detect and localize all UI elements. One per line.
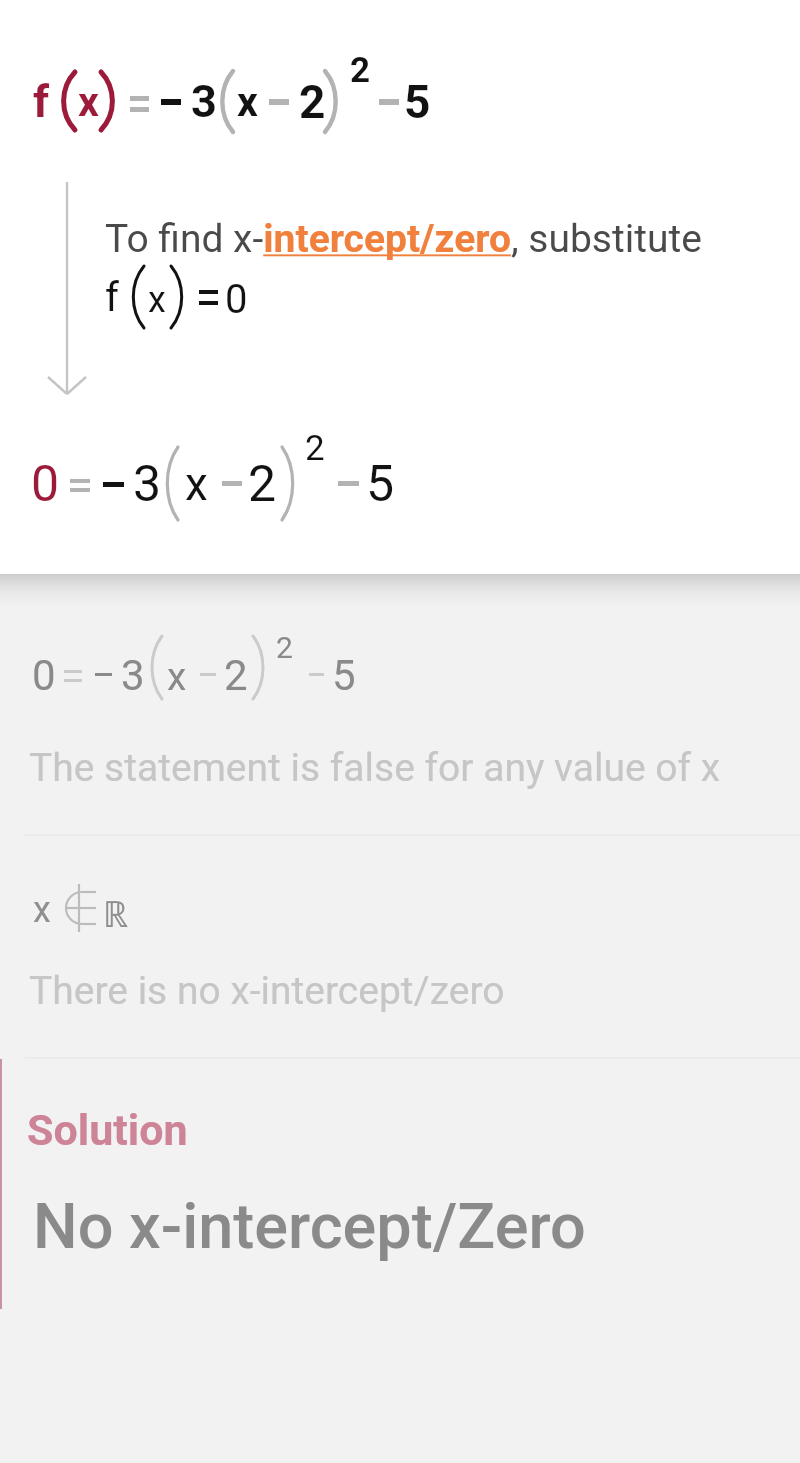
staticText: 2 (305, 428, 325, 469)
staticText: 5 (332, 651, 356, 700)
staticText: f (105, 274, 119, 321)
button[interactable]: 0 (0, 574, 800, 834)
staticText: x (237, 78, 258, 126)
staticText: f (33, 75, 50, 128)
staticText: 0 (225, 276, 248, 323)
staticText: 2 (276, 630, 293, 665)
staticText: x (185, 457, 208, 511)
staticText: 3 (133, 455, 162, 514)
staticText: 2 (224, 651, 248, 700)
staticText: 2 (248, 455, 277, 514)
button[interactable]: Worked solution steps (0, 0, 800, 574)
staticText: x (167, 654, 187, 700)
staticText: 0 (32, 651, 56, 700)
staticText: Solution (27, 1105, 188, 1155)
staticText: The statement is false for any value of … (29, 745, 721, 791)
staticText: 2 (350, 50, 371, 91)
staticText: To find x-intercept/zero, substitute (105, 216, 702, 262)
staticText: 2 (299, 75, 326, 129)
other: is not an element of (64, 890, 96, 926)
staticText: 5 (366, 455, 395, 514)
staticText: 3 (191, 75, 217, 128)
other: Leads to (46, 182, 88, 394)
staticText: x (78, 78, 99, 126)
button[interactable]: x (0, 836, 800, 1057)
staticText: x (148, 279, 166, 321)
button[interactable]: Solution (0, 1059, 800, 1309)
staticText: 0 (31, 455, 60, 514)
staticText: No x-intercept/Zero (33, 1190, 586, 1264)
staticText: There is no x-intercept/zero (29, 968, 505, 1014)
staticText: x (33, 889, 51, 931)
staticText: 5 (404, 75, 431, 129)
staticText: ℝ (103, 889, 129, 938)
staticText: 3 (121, 651, 145, 700)
